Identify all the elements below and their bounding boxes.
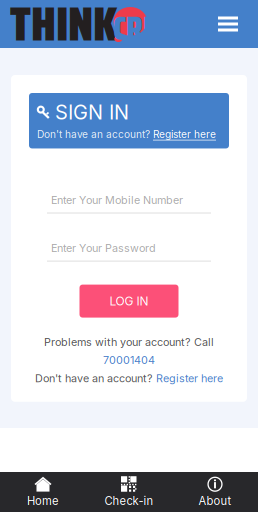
staticText: 70001404 (103, 354, 155, 367)
staticText: SIGN IN (55, 100, 129, 124)
button[interactable]: Register here (156, 372, 223, 385)
staticText: Don't have an account? (37, 128, 150, 140)
button[interactable]: Register here (153, 128, 216, 140)
staticText: THINK (10, 0, 117, 62)
button[interactable]: About (172, 471, 258, 512)
staticText: CRM (113, 2, 167, 54)
staticText: LOG IN (109, 294, 148, 308)
button[interactable]: Check-in (86, 471, 172, 512)
button[interactable]: LOG IN (79, 285, 178, 318)
staticText: Enter Your Password (51, 241, 156, 255)
button[interactable]: Menu (210, 8, 246, 39)
button[interactable]: Home (0, 471, 86, 512)
staticText: Don't have an account? (35, 372, 153, 385)
staticText: Register here (153, 128, 216, 140)
staticText: Register here (156, 372, 223, 385)
staticText: Check-in (104, 494, 153, 508)
staticText: Home (27, 494, 59, 508)
staticText: Problems with your account? Call (44, 336, 214, 349)
staticText: About (198, 494, 231, 508)
button[interactable]: 70001404 (103, 354, 155, 367)
staticText: Enter Your Mobile Number (51, 193, 183, 207)
